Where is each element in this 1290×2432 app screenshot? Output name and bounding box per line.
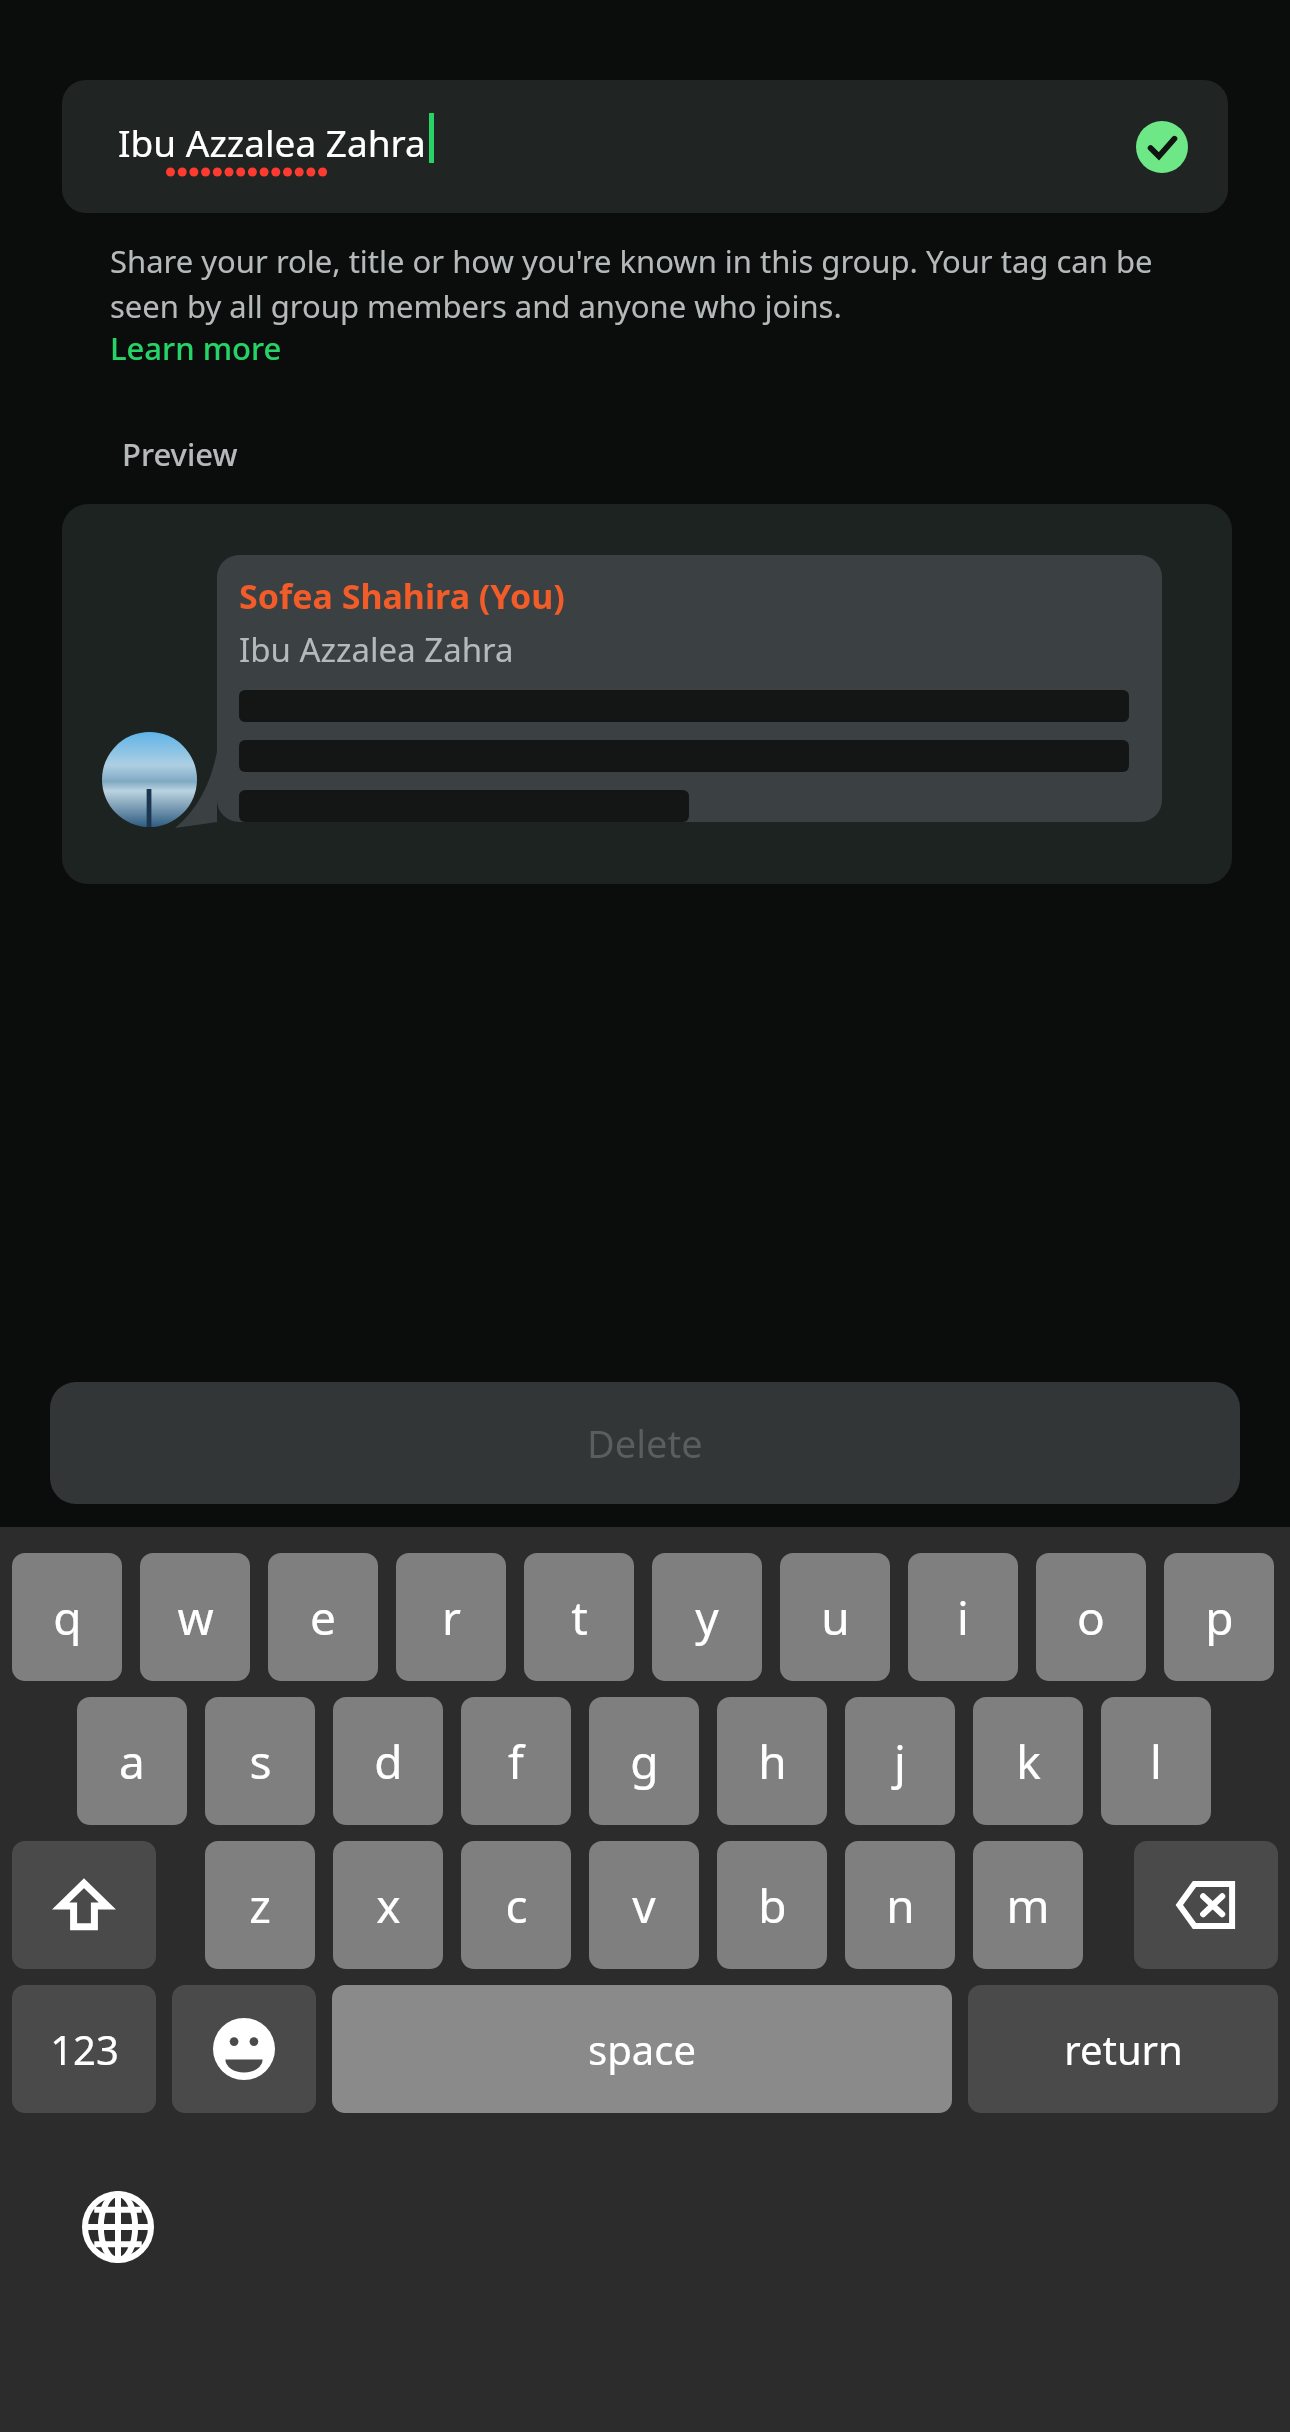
staticText: c xyxy=(505,1874,528,1937)
staticText: Share your role, title or how you're kno… xyxy=(110,240,1170,327)
staticText: b xyxy=(758,1874,787,1937)
staticText: p xyxy=(1205,1586,1234,1649)
staticText: return xyxy=(1064,2022,1183,2076)
staticText: x xyxy=(376,1874,401,1937)
staticText: y xyxy=(695,1586,719,1649)
staticText: 123 xyxy=(50,2022,119,2076)
button[interactable]: d xyxy=(333,1697,443,1825)
button[interactable]: Delete xyxy=(50,1382,1240,1504)
button[interactable]: n xyxy=(845,1841,955,1969)
staticText: h xyxy=(758,1730,787,1793)
button[interactable]: Ibu Azzalea Zahra xyxy=(62,80,1228,213)
button[interactable]: z xyxy=(205,1841,315,1969)
button[interactable]: v xyxy=(589,1841,699,1969)
staticText: Delete xyxy=(587,1417,703,1469)
button[interactable]: b xyxy=(717,1841,827,1969)
staticText: d xyxy=(374,1730,403,1793)
staticText: i xyxy=(957,1586,969,1649)
button[interactable]: r xyxy=(396,1553,506,1681)
staticText: k xyxy=(1016,1730,1041,1793)
staticText: Sofea Shahira (You) xyxy=(239,573,565,619)
button[interactable]: l xyxy=(1101,1697,1211,1825)
button[interactable]: c xyxy=(461,1841,571,1969)
button[interactable]: i xyxy=(908,1553,1018,1681)
button[interactable]: k xyxy=(973,1697,1083,1825)
button[interactable]: p xyxy=(1164,1553,1274,1681)
button[interactable]: m xyxy=(973,1841,1083,1969)
staticText: j xyxy=(894,1730,906,1793)
button[interactable]: 123 xyxy=(12,1985,156,2113)
button[interactable]: Learn more xyxy=(110,327,282,369)
staticText: Preview xyxy=(122,433,238,475)
staticText: m xyxy=(1006,1874,1050,1937)
button[interactable]: o xyxy=(1036,1553,1146,1681)
button[interactable]: Shift xyxy=(12,1841,156,1969)
staticText: t xyxy=(571,1586,588,1649)
button[interactable]: g xyxy=(589,1697,699,1825)
staticText: a xyxy=(119,1730,145,1793)
button[interactable]: h xyxy=(717,1697,827,1825)
staticText: f xyxy=(508,1730,524,1793)
button[interactable]: t xyxy=(524,1553,634,1681)
button[interactable]: Change keyboard language xyxy=(78,2187,158,2267)
staticText: g xyxy=(630,1730,659,1793)
button[interactable]: a xyxy=(77,1697,187,1825)
staticText: o xyxy=(1077,1586,1105,1649)
button[interactable]: Backspace xyxy=(1134,1841,1278,1969)
staticText: r xyxy=(442,1586,461,1649)
staticText: w xyxy=(177,1586,214,1649)
button[interactable]: e xyxy=(268,1553,378,1681)
button[interactable]: s xyxy=(205,1697,315,1825)
button[interactable]: u xyxy=(780,1553,890,1681)
staticText: v xyxy=(632,1874,656,1937)
staticText: Ibu Azzalea Zahra xyxy=(118,117,426,167)
staticText: n xyxy=(886,1874,915,1937)
button[interactable]: w xyxy=(140,1553,250,1681)
button[interactable]: Confirm xyxy=(1136,121,1188,173)
staticText: s xyxy=(249,1730,272,1793)
staticText: Learn more xyxy=(110,327,282,369)
staticText: u xyxy=(821,1586,850,1649)
button[interactable]: return xyxy=(968,1985,1278,2113)
staticText: Ibu Azzalea Zahra xyxy=(239,627,514,672)
button[interactable]: x xyxy=(333,1841,443,1969)
button[interactable]: space xyxy=(332,1985,952,2113)
button[interactable]: q xyxy=(12,1553,122,1681)
staticText: e xyxy=(310,1586,336,1649)
staticText: l xyxy=(1150,1730,1162,1793)
staticText: space xyxy=(588,2022,696,2076)
button[interactable]: j xyxy=(845,1697,955,1825)
button[interactable]: y xyxy=(652,1553,762,1681)
staticText: q xyxy=(53,1586,82,1649)
button[interactable]: Emoji xyxy=(172,1985,316,2113)
button[interactable]: f xyxy=(461,1697,571,1825)
staticText: z xyxy=(249,1874,271,1937)
